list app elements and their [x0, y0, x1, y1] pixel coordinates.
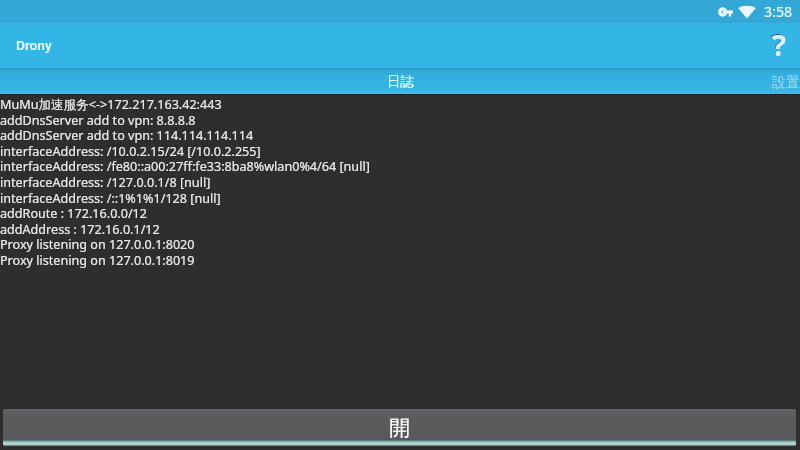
- staticText: interfaceAddress: /127.0.0.1/8 [null]: [0, 174, 211, 191]
- staticText: 設置: [772, 74, 800, 92]
- button[interactable]: 日誌: [115, 69, 685, 94]
- staticText: ?: [771, 24, 786, 65]
- staticText: interfaceAddress: /::1%1%1/128 [null]: [0, 190, 221, 207]
- staticText: 開: [389, 415, 410, 441]
- staticText: addRoute : 172.16.0.0/12: [0, 205, 148, 222]
- staticText: addDnsServer add to vpn: 8.8.8.8: [0, 112, 196, 129]
- button[interactable]: 開: [3, 409, 796, 446]
- staticText: MuMu加速服务<->172.217.163.42:443: [0, 96, 222, 113]
- staticText: interfaceAddress: /fe80::a00:27ff:fe33:8…: [0, 158, 370, 175]
- staticText: Drony: [16, 37, 52, 53]
- staticText: ?: [772, 25, 786, 64]
- staticText: addAddress : 172.16.0.1/12: [0, 221, 160, 238]
- staticText: Proxy listening on 127.0.0.1:8020: [0, 236, 195, 253]
- button[interactable]: Help: [752, 23, 800, 68]
- staticText: addDnsServer add to vpn: 114.114.114.114: [0, 127, 254, 144]
- button[interactable]: 設置: [686, 69, 800, 94]
- staticText: interfaceAddress: /10.0.2.15/24 [/10.0.2…: [0, 143, 261, 160]
- staticText: 3:58: [764, 2, 793, 21]
- staticText: Proxy listening on 127.0.0.1:8019: [0, 252, 195, 269]
- staticText: 日誌: [387, 73, 414, 90]
